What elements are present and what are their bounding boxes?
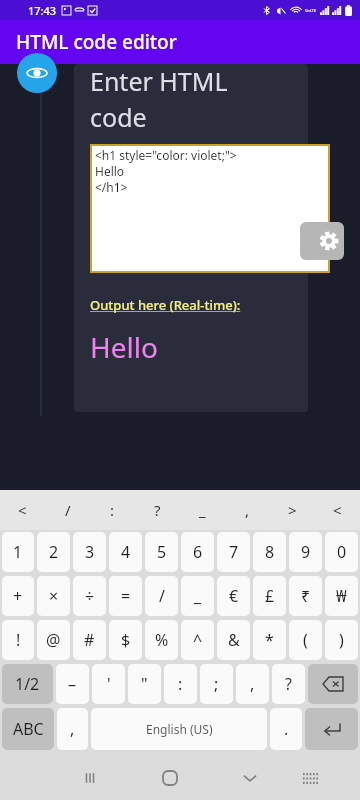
button[interactable]: × xyxy=(37,576,70,616)
staticText: ₹ xyxy=(301,585,311,607)
staticText: ₩ xyxy=(336,585,347,607)
staticText: / xyxy=(65,500,71,520)
button[interactable]: ( xyxy=(289,620,322,660)
button[interactable]: ) xyxy=(325,620,358,660)
button[interactable]: ABC xyxy=(2,708,54,750)
staticText: ) xyxy=(339,629,344,651)
staticText: × xyxy=(49,585,59,607)
staticText: 6 xyxy=(193,541,203,563)
button[interactable]: Settings xyxy=(300,222,344,260)
staticText: £ xyxy=(265,585,275,607)
button[interactable]: / xyxy=(145,576,178,616)
staticText: ? xyxy=(285,673,292,695)
button[interactable]: > xyxy=(270,490,315,530)
button[interactable]: _ xyxy=(181,576,214,616)
button[interactable]: 4 xyxy=(109,532,142,572)
button[interactable]: # xyxy=(73,620,106,660)
button[interactable]: : xyxy=(90,490,135,530)
staticText: : xyxy=(178,673,183,695)
button[interactable]: < xyxy=(315,490,360,530)
staticText: + xyxy=(13,585,23,607)
staticText: 5 xyxy=(157,541,167,563)
staticText: # xyxy=(84,629,95,651)
button[interactable]: _ xyxy=(180,490,225,530)
button[interactable]: £ xyxy=(253,576,286,616)
staticText: @ xyxy=(46,629,61,651)
staticText: _ xyxy=(199,500,206,520)
button[interactable]: , xyxy=(57,708,88,750)
button[interactable]: 7 xyxy=(217,532,250,572)
button[interactable]: 6 xyxy=(181,532,214,572)
staticText: ! xyxy=(16,629,21,651)
staticText: _ xyxy=(194,585,202,607)
button[interactable]: Recents xyxy=(65,756,115,800)
button[interactable]: Enter xyxy=(305,708,358,750)
staticText: 1/2 xyxy=(15,673,40,695)
button[interactable]: Home xyxy=(145,756,195,800)
staticText: " xyxy=(141,673,148,695)
staticText: < xyxy=(18,500,27,520)
staticText: , xyxy=(70,718,75,740)
staticText: 2 xyxy=(49,541,59,563)
button[interactable]: . xyxy=(270,708,302,750)
button[interactable]: 1 xyxy=(2,532,34,572)
button[interactable]: , xyxy=(236,664,269,704)
staticText: * xyxy=(265,629,274,651)
staticText: 1 xyxy=(13,541,23,563)
button[interactable]: $ xyxy=(109,620,142,660)
button[interactable]: / xyxy=(45,490,90,530)
staticText: Enter HTML xyxy=(90,64,228,98)
staticText: HTML code editor xyxy=(16,29,177,55)
button[interactable]: Hide keyboard xyxy=(225,756,275,800)
button[interactable]: < xyxy=(0,490,45,530)
button[interactable]: % xyxy=(145,620,178,660)
button[interactable]: ₩ xyxy=(325,576,358,616)
button[interactable]: + xyxy=(2,576,34,616)
staticText: % xyxy=(155,629,169,651)
button[interactable]: @ xyxy=(37,620,70,660)
staticText: € xyxy=(229,585,239,607)
button[interactable]: * xyxy=(253,620,286,660)
staticText: = xyxy=(121,585,131,607)
staticText: ABC xyxy=(13,718,44,740)
button[interactable]: 0 xyxy=(325,532,358,572)
staticText: <h1 style="color: violet;"> xyxy=(95,147,237,163)
button[interactable]: ! xyxy=(2,620,34,660)
button[interactable]: 1/2 xyxy=(2,664,53,704)
staticText: ^ xyxy=(193,629,203,651)
button[interactable]: English (US) xyxy=(91,708,267,750)
button[interactable]: 8 xyxy=(253,532,286,572)
staticText: $ xyxy=(121,629,131,651)
button[interactable]: – xyxy=(56,664,89,704)
button[interactable]: ' xyxy=(92,664,125,704)
staticText: > xyxy=(288,500,297,520)
button[interactable]: ? xyxy=(135,490,180,530)
staticText: 0 xyxy=(337,541,347,563)
button[interactable]: ÷ xyxy=(73,576,106,616)
button[interactable]: & xyxy=(217,620,250,660)
button[interactable]: <h1 style="color: violet;"> xyxy=(90,144,330,273)
button[interactable]: App logo xyxy=(17,53,57,93)
button[interactable]: Backspace xyxy=(308,664,358,704)
button[interactable]: , xyxy=(225,490,270,530)
button[interactable]: ? xyxy=(272,664,305,704)
button[interactable]: Output here (Real-time): xyxy=(90,296,241,314)
staticText: Hello xyxy=(90,328,158,366)
button[interactable]: 9 xyxy=(289,532,322,572)
button[interactable]: = xyxy=(109,576,142,616)
button[interactable]: 3 xyxy=(73,532,106,572)
staticText: ? xyxy=(154,500,161,520)
button[interactable]: ; xyxy=(200,664,233,704)
button[interactable]: HTML code editor xyxy=(0,20,360,64)
staticText: VoLTE xyxy=(305,8,317,13)
button[interactable]: " xyxy=(128,664,161,704)
staticText: English (US) xyxy=(146,721,213,737)
button[interactable]: ₹ xyxy=(289,576,322,616)
button[interactable]: 2 xyxy=(37,532,70,572)
button[interactable]: ^ xyxy=(181,620,214,660)
button[interactable]: 5 xyxy=(145,532,178,572)
button[interactable]: € xyxy=(217,576,250,616)
button[interactable]: Switch keyboard xyxy=(285,756,335,800)
button[interactable]: : xyxy=(164,664,197,704)
staticText: / xyxy=(159,585,165,607)
